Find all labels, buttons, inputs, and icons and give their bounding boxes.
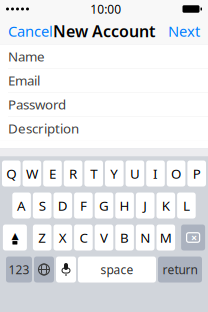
staticText: P xyxy=(193,165,201,182)
button[interactable]: Q xyxy=(2,160,21,186)
button[interactable]: Shift xyxy=(3,224,27,250)
staticText: A xyxy=(17,197,26,214)
button[interactable]: R xyxy=(64,160,82,186)
staticText: S xyxy=(39,197,46,214)
staticText: Password xyxy=(8,95,66,113)
button[interactable]: T xyxy=(84,160,103,186)
staticText: D xyxy=(58,197,68,214)
button[interactable]: E xyxy=(43,160,62,186)
staticText: × xyxy=(191,230,197,245)
staticText: ▲ xyxy=(11,230,18,241)
button[interactable]: H xyxy=(115,192,134,218)
staticText: Description xyxy=(8,119,79,137)
button[interactable]: X xyxy=(53,224,72,250)
button[interactable]: return xyxy=(158,256,202,282)
staticText: H xyxy=(120,197,130,214)
staticText: Name xyxy=(8,47,45,65)
button[interactable]: N xyxy=(136,224,154,250)
staticText: 123 xyxy=(8,261,29,277)
button[interactable]: J xyxy=(136,192,154,218)
staticText: return xyxy=(162,261,197,277)
staticText: U xyxy=(130,165,140,182)
button[interactable]: O xyxy=(167,160,185,186)
button[interactable]: S xyxy=(33,192,51,218)
button[interactable]: Next keyboard xyxy=(34,256,54,282)
button[interactable]: Name xyxy=(0,44,208,68)
button[interactable]: G xyxy=(95,192,113,218)
staticText: C xyxy=(79,229,87,246)
button[interactable]: U xyxy=(126,160,144,186)
staticText: F xyxy=(80,197,87,214)
staticText: New Account xyxy=(53,20,155,42)
button[interactable]: M xyxy=(156,224,175,250)
button[interactable]: A xyxy=(12,192,31,218)
staticText: W xyxy=(26,165,38,182)
button[interactable]: Cancel xyxy=(0,18,61,44)
button[interactable]: Next xyxy=(160,18,208,44)
staticText: Next xyxy=(168,21,200,41)
staticText: M xyxy=(160,229,172,246)
staticText: G xyxy=(99,197,109,214)
staticText: Z xyxy=(38,229,46,246)
button[interactable]: Y xyxy=(105,160,124,186)
button[interactable]: B xyxy=(115,224,134,250)
staticText: Email xyxy=(8,71,40,89)
staticText: Q xyxy=(6,165,16,182)
staticText: Cancel xyxy=(8,21,53,41)
button[interactable]: F xyxy=(74,192,93,218)
staticText: T xyxy=(90,165,97,182)
staticText: L xyxy=(183,197,190,214)
staticText: N xyxy=(140,229,150,246)
button[interactable]: D xyxy=(53,192,72,218)
staticText: I xyxy=(153,165,158,182)
staticText: O xyxy=(171,165,181,182)
button[interactable]: space xyxy=(78,256,156,282)
staticText: space xyxy=(100,261,133,277)
button[interactable]: Email xyxy=(0,68,208,92)
staticText: K xyxy=(162,197,170,214)
button[interactable]: I xyxy=(146,160,165,186)
staticText: Y xyxy=(110,165,118,182)
staticText: 10:00 xyxy=(90,1,121,17)
staticText: R xyxy=(69,165,77,182)
button[interactable]: V xyxy=(95,224,113,250)
button[interactable]: C xyxy=(74,224,93,250)
button[interactable]: Password xyxy=(0,92,208,116)
staticText: B xyxy=(120,229,129,246)
button[interactable]: Description xyxy=(0,116,208,140)
staticText: V xyxy=(100,229,108,246)
button[interactable]: P xyxy=(187,160,206,186)
button[interactable]: 123 xyxy=(6,256,32,282)
button[interactable]: W xyxy=(23,160,41,186)
staticText: J xyxy=(143,197,147,214)
staticText: E xyxy=(49,165,56,182)
button[interactable]: Z xyxy=(33,224,51,250)
button[interactable]: L xyxy=(177,192,196,218)
staticText: X xyxy=(59,229,67,246)
button[interactable]: Dictation xyxy=(56,256,76,282)
button[interactable]: Delete xyxy=(181,224,205,250)
button[interactable]: K xyxy=(156,192,175,218)
